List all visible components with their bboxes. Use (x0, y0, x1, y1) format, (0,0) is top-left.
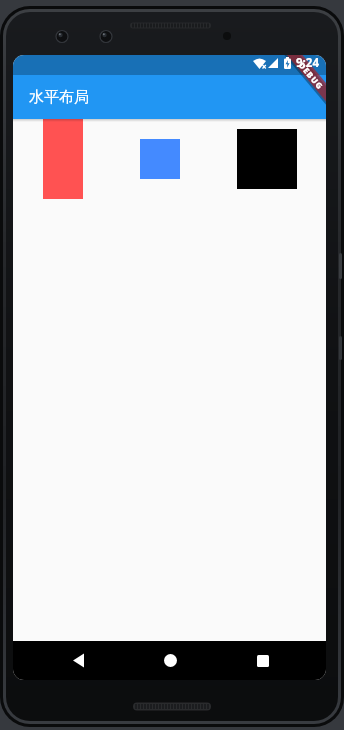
button[interactable] (242, 641, 283, 680)
button[interactable] (150, 641, 191, 680)
staticText: 9:24 (296, 55, 319, 71)
staticText: DEBUG (297, 60, 326, 92)
button[interactable] (43, 119, 83, 199)
button[interactable] (58, 641, 99, 680)
staticText: 水平布局 (29, 88, 89, 107)
